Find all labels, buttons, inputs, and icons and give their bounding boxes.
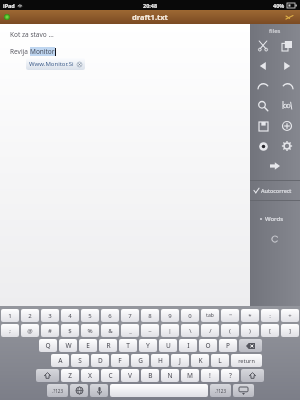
button[interactable]: return — [231, 354, 262, 367]
button[interactable]: Spell check — [277, 96, 297, 116]
button[interactable]: Send — [265, 156, 285, 176]
button[interactable]: F — [111, 354, 129, 367]
button[interactable]: Shift — [36, 369, 59, 382]
button[interactable]: 8 — [141, 309, 159, 322]
staticText: Kot za stavo ... — [10, 30, 54, 39]
button[interactable]: \ — [181, 324, 199, 337]
button[interactable]: 4 — [61, 309, 79, 322]
button[interactable]: H — [151, 354, 169, 367]
staticText: Revija — [10, 47, 30, 56]
button[interactable]: : — [261, 309, 279, 322]
staticText: % — [87, 327, 93, 335]
button[interactable]: X — [81, 369, 99, 382]
button[interactable]: " — [221, 309, 239, 322]
button[interactable]: $ — [61, 324, 79, 337]
button[interactable]: Z — [61, 369, 79, 382]
button[interactable]: ( — [221, 324, 239, 337]
button[interactable]: Search — [253, 96, 273, 116]
button[interactable]: _ — [121, 324, 139, 337]
button[interactable]: C — [101, 369, 119, 382]
button[interactable]: .?123 — [210, 384, 231, 397]
staticText: J — [179, 356, 181, 365]
button[interactable]: E — [79, 339, 97, 352]
button[interactable]: Cut — [253, 36, 273, 56]
button[interactable]: Space — [110, 384, 208, 397]
button[interactable]: Preferences — [277, 136, 297, 156]
button[interactable]: ] — [281, 324, 299, 337]
button[interactable]: Q — [39, 339, 57, 352]
button[interactable]: ? — [221, 369, 239, 382]
button[interactable]: A — [51, 354, 69, 367]
button[interactable]: 7 — [121, 309, 139, 322]
button[interactable]: 3 — [41, 309, 59, 322]
staticText: iPad — [3, 2, 15, 9]
button[interactable]: K — [191, 354, 209, 367]
staticText: .?123 — [52, 388, 63, 394]
staticText: return — [238, 357, 255, 364]
staticText: .?123 — [215, 388, 226, 394]
staticText: " — [229, 312, 232, 320]
button[interactable]: Record — [253, 136, 273, 156]
button[interactable]: Refresh — [269, 233, 281, 245]
button[interactable]: [ — [261, 324, 279, 337]
button[interactable]: O — [199, 339, 217, 352]
staticText: F — [118, 356, 122, 365]
button[interactable]: tab — [201, 309, 219, 322]
button[interactable]: ! — [201, 369, 219, 382]
button[interactable]: Hide keyboard — [233, 384, 254, 397]
button[interactable]: .?123 — [47, 384, 68, 397]
button[interactable]: 1 — [1, 309, 19, 322]
button[interactable]: @ — [21, 324, 39, 337]
button[interactable]: Change keyboard — [70, 384, 88, 397]
button[interactable]: ; — [1, 324, 19, 337]
button[interactable]: W — [59, 339, 77, 352]
button[interactable]: Add — [277, 116, 297, 136]
button[interactable]: Redo — [277, 76, 297, 96]
button[interactable]: Previous — [253, 56, 273, 76]
button[interactable]: Next — [277, 56, 297, 76]
button[interactable]: Dictation — [90, 384, 108, 397]
button[interactable]: M — [181, 369, 199, 382]
button[interactable]: U — [159, 339, 177, 352]
button[interactable]: Autocorrect — [250, 187, 300, 194]
button[interactable]: I — [179, 339, 197, 352]
button[interactable]: # — [41, 324, 59, 337]
button[interactable]: G — [131, 354, 149, 367]
button[interactable]: Status indicator — [4, 14, 10, 20]
button[interactable]: N — [161, 369, 179, 382]
button[interactable]: P — [219, 339, 237, 352]
button[interactable]: T — [119, 339, 137, 352]
button[interactable]: 0 — [181, 309, 199, 322]
button[interactable]: Backspace — [239, 339, 262, 352]
button[interactable]: Words — [250, 215, 300, 223]
button[interactable]: Y — [139, 339, 157, 352]
button[interactable]: L — [211, 354, 229, 367]
button[interactable]: Undo — [253, 76, 273, 96]
button[interactable]: Shift — [241, 369, 264, 382]
button[interactable]: D — [91, 354, 109, 367]
button[interactable]: Settings — [284, 12, 295, 23]
button[interactable]: 2 — [21, 309, 39, 322]
button[interactable]: Www.Monitor.Si — [29, 60, 82, 68]
button[interactable]: V — [121, 369, 139, 382]
button[interactable]: Copy — [277, 36, 297, 56]
button[interactable]: S — [71, 354, 89, 367]
staticText: ( — [229, 327, 231, 335]
button[interactable]: Save — [253, 116, 273, 136]
button[interactable]: 5 — [81, 309, 99, 322]
button[interactable]: ~ — [141, 324, 159, 337]
button[interactable]: + — [281, 309, 299, 322]
button[interactable]: | — [161, 324, 179, 337]
button[interactable]: / — [201, 324, 219, 337]
button[interactable]: B — [141, 369, 159, 382]
staticText: 40% — [273, 2, 285, 9]
button[interactable]: 9 — [161, 309, 179, 322]
button[interactable]: % — [81, 324, 99, 337]
button[interactable]: 6 — [101, 309, 119, 322]
button[interactable]: ) — [241, 324, 259, 337]
button[interactable]: * — [241, 309, 259, 322]
button[interactable]: & — [101, 324, 119, 337]
staticText: / — [209, 327, 212, 335]
button[interactable]: R — [99, 339, 117, 352]
button[interactable]: J — [171, 354, 189, 367]
